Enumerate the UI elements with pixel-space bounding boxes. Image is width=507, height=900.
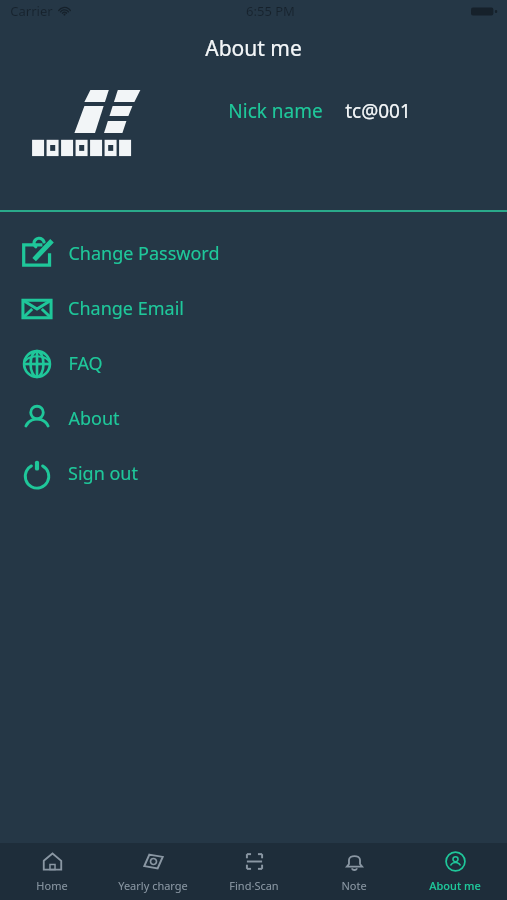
staticText: About me: [429, 878, 481, 893]
button[interactable]: Sign out: [0, 446, 507, 501]
staticText: About: [68, 406, 120, 431]
button[interactable]: About: [0, 391, 507, 446]
staticText: Note: [341, 878, 367, 893]
staticText: Carrier: [10, 2, 53, 20]
button[interactable]: Find·Scan: [205, 843, 303, 900]
button[interactable]: About me: [406, 843, 504, 900]
staticText: tc@001: [345, 98, 411, 124]
staticText: Find·Scan: [229, 878, 279, 893]
other: About me: [444, 850, 467, 873]
button[interactable]: Change Email: [0, 281, 507, 336]
button[interactable]: Change Password: [0, 226, 507, 281]
button[interactable]: Note: [305, 843, 403, 900]
other: Find·Scan: [243, 850, 266, 873]
other: Note: [343, 850, 366, 873]
staticText: 6:55 PM: [246, 2, 295, 20]
staticText: Change Email: [68, 296, 184, 321]
other: Yearly charge: [142, 850, 165, 873]
staticText: Sign out: [68, 461, 138, 486]
button[interactable]: Yearly charge: [104, 843, 202, 900]
staticText: Home: [36, 878, 68, 893]
button[interactable]: Home: [3, 843, 101, 900]
staticText: FAQ: [68, 351, 103, 376]
staticText: Yearly charge: [118, 878, 188, 893]
staticText: Change Password: [68, 241, 220, 266]
staticText: Nick name: [228, 98, 323, 124]
other: Home: [41, 850, 64, 873]
staticText: About me: [205, 34, 302, 63]
button[interactable]: FAQ: [0, 336, 507, 391]
